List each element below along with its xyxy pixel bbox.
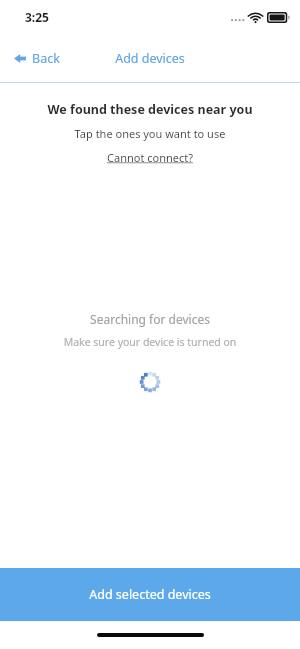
button[interactable]: Add selected devices	[0, 568, 300, 621]
staticText: Add selected devices	[89, 586, 211, 603]
staticText: Cannot connect?	[107, 150, 193, 165]
button[interactable]: Cannot connect?	[102, 148, 198, 167]
button[interactable]: Back	[0, 44, 72, 73]
staticText: Searching for devices	[0, 311, 300, 327]
staticText: Tap the ones you want to use	[0, 126, 300, 141]
staticText: Add devices	[115, 50, 185, 67]
staticText: Make sure your device is turned on	[0, 335, 300, 349]
staticText: Back	[32, 50, 60, 67]
staticText: 3:25	[25, 9, 49, 25]
other: Back	[14, 53, 26, 64]
staticText: We found these devices near you	[0, 101, 300, 118]
